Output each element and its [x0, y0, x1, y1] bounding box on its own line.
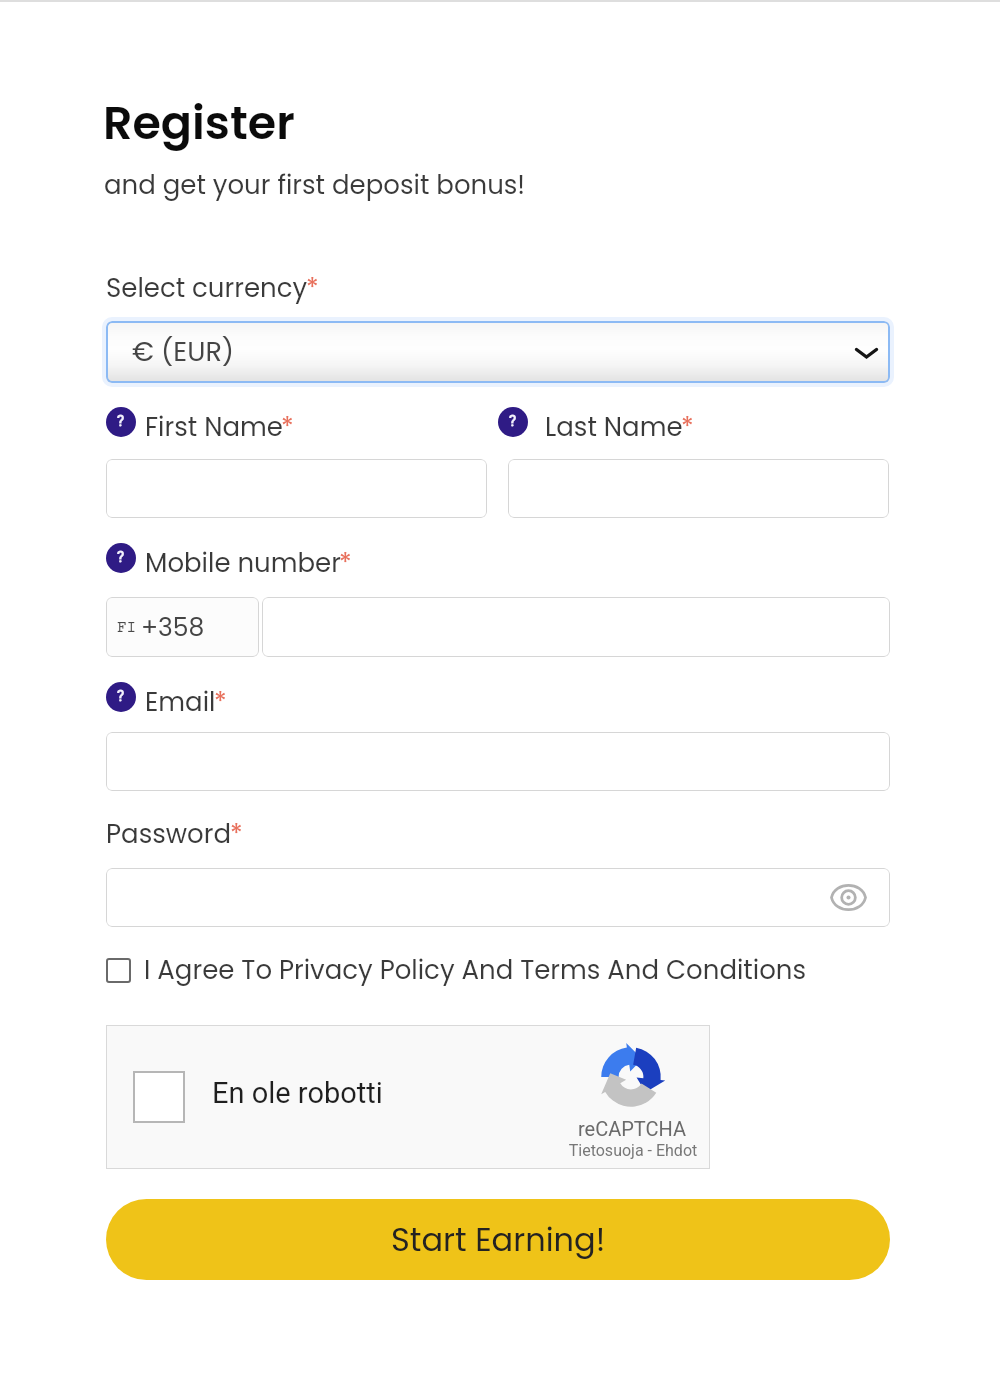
staticText: Register — [103, 91, 295, 155]
staticText: € (EUR) — [132, 333, 235, 371]
staticText: Last Name — [545, 409, 683, 445]
staticText: Email — [145, 684, 216, 720]
staticText: * — [214, 684, 227, 720]
staticText: and get your first deposit bonus! — [104, 167, 526, 203]
staticText: Select currency — [106, 270, 308, 306]
button[interactable] — [508, 459, 889, 518]
button[interactable]: € (EUR) — [106, 321, 890, 383]
staticText: Tietosuoja - Ehdot — [556, 1141, 710, 1160]
button[interactable]: I Agree To Privacy Policy And Terms And … — [106, 952, 807, 988]
button[interactable] — [106, 732, 890, 791]
staticText: First Name — [145, 409, 283, 445]
staticText: +358 — [141, 610, 205, 645]
button[interactable]: I'm not a robot checkbox — [106, 1025, 710, 1169]
staticText: ? — [117, 687, 125, 705]
button[interactable]: I'm not a robot checkbox — [133, 1071, 185, 1123]
button[interactable]: Show password — [106, 868, 890, 927]
staticText: ? — [509, 412, 517, 430]
staticText: * — [339, 545, 352, 581]
button[interactable]: Start Earning! — [106, 1199, 890, 1280]
staticText: ? — [117, 548, 125, 566]
staticText: * — [230, 816, 243, 852]
button[interactable] — [262, 597, 890, 657]
button[interactable]: FI — [106, 597, 259, 657]
staticText: FI — [117, 619, 137, 637]
staticText: * — [306, 270, 319, 306]
button[interactable] — [106, 459, 487, 518]
staticText: ? — [117, 412, 125, 430]
staticText: * — [281, 409, 294, 445]
staticText: Start Earning! — [391, 1217, 606, 1262]
staticText: * — [681, 409, 694, 445]
staticText: I Agree To Privacy Policy And Terms And … — [144, 952, 807, 988]
staticText: Password — [106, 816, 232, 852]
staticText: En ole robotti — [212, 1076, 383, 1110]
staticText: Mobile number — [145, 545, 341, 581]
staticText: reCAPTCHA — [577, 1117, 687, 1140]
other: Show password — [830, 879, 867, 916]
